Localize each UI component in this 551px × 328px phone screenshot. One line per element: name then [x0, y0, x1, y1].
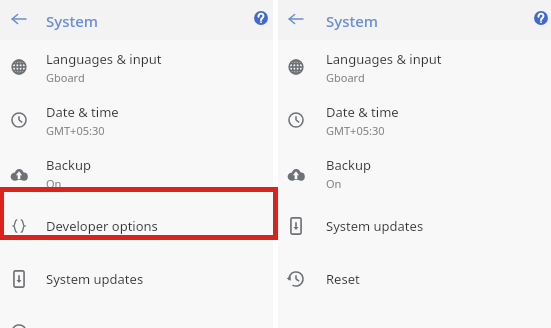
button[interactable]: Help: [249, 6, 273, 30]
staticText: GMT+05:30: [326, 123, 385, 138]
staticText: GMT+05:30: [46, 123, 105, 138]
staticText: Gboard: [326, 70, 365, 85]
button[interactable]: Backup: [0, 146, 273, 199]
button[interactable]: Reset: [278, 252, 551, 305]
staticText: Backup: [46, 156, 91, 174]
staticText: System updates: [46, 270, 144, 288]
button[interactable]: Date & time: [0, 93, 273, 146]
staticText: Reset: [326, 270, 360, 288]
staticText: System updates: [326, 217, 424, 235]
staticText: Languages & input: [46, 50, 162, 68]
button[interactable]: Languages & input: [0, 40, 273, 93]
staticText: Gboard: [46, 70, 85, 85]
staticText: Backup: [326, 156, 371, 174]
button[interactable]: Developer options: [0, 199, 273, 252]
staticText: Languages & input: [326, 50, 442, 68]
button[interactable]: System updates: [278, 199, 551, 252]
button[interactable]: Back: [284, 7, 308, 31]
staticText: On: [326, 176, 342, 191]
button[interactable]: Reset: [0, 305, 273, 328]
staticText: Developer options: [46, 217, 158, 235]
staticText: On: [46, 176, 62, 191]
staticText: System: [46, 11, 99, 31]
button[interactable]: Languages & input: [278, 40, 551, 93]
staticText: Date & time: [46, 103, 119, 121]
button[interactable]: Date & time: [278, 93, 551, 146]
button[interactable]: Back: [7, 7, 31, 31]
button[interactable]: System updates: [0, 252, 273, 305]
button[interactable]: Help: [529, 6, 551, 30]
staticText: Date & time: [326, 103, 399, 121]
button[interactable]: Backup: [278, 146, 551, 199]
staticText: System: [326, 11, 379, 31]
